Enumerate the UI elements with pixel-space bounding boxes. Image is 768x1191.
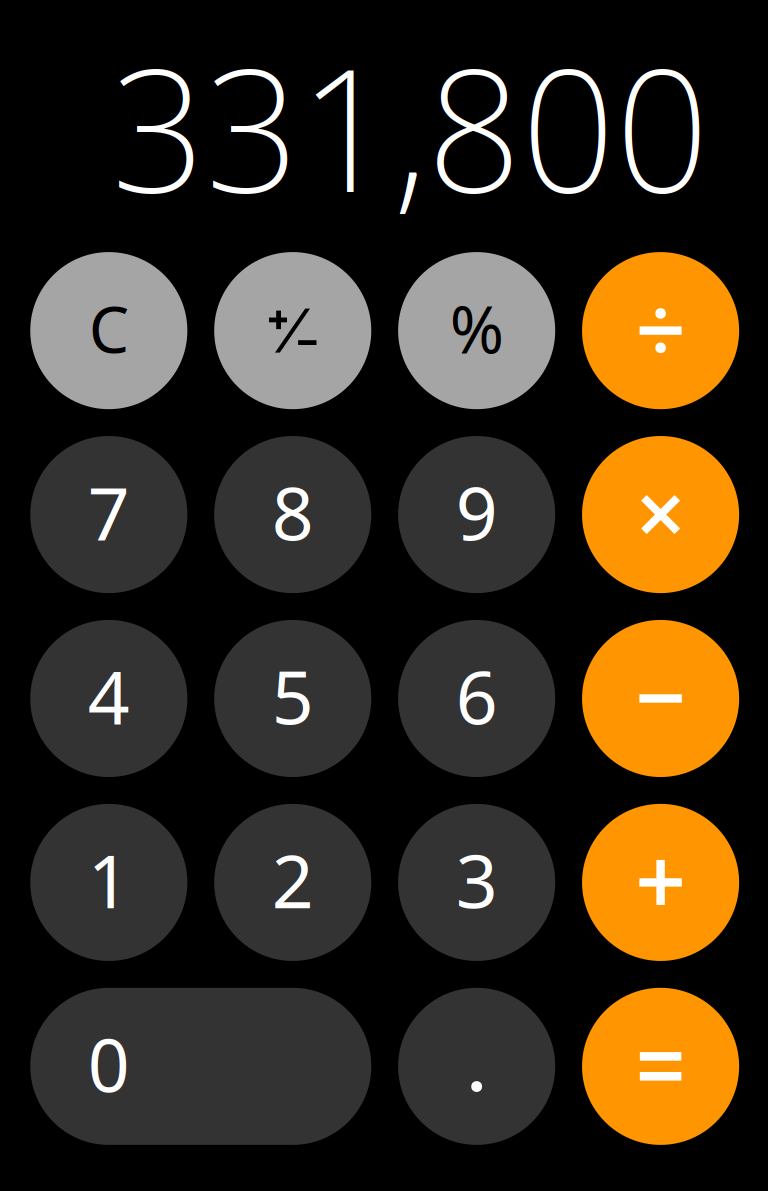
button[interactable]: 2 xyxy=(214,804,371,961)
button[interactable]: Multiply xyxy=(582,436,739,593)
button[interactable]: Plus minus xyxy=(214,252,371,409)
staticText: 7 xyxy=(88,462,130,562)
button[interactable]: 3 xyxy=(398,804,555,961)
staticText: 6 xyxy=(456,646,498,746)
button[interactable]: C xyxy=(30,252,187,409)
staticText: 0 xyxy=(88,1014,130,1114)
staticText: 9 xyxy=(456,462,498,562)
staticText: 331,800 xyxy=(111,10,709,242)
staticText: 8 xyxy=(272,462,314,562)
staticText: 3 xyxy=(456,830,498,930)
button[interactable]: Plus xyxy=(582,804,739,961)
staticText: % xyxy=(450,284,504,373)
button[interactable]: 0 xyxy=(30,988,371,1145)
staticText: C xyxy=(89,284,129,372)
button[interactable]: 4 xyxy=(30,620,187,777)
button[interactable]: 8 xyxy=(214,436,371,593)
staticText: 2 xyxy=(272,830,314,930)
button[interactable]: 5 xyxy=(214,620,371,777)
button[interactable]: 9 xyxy=(398,436,555,593)
button[interactable]: Minus xyxy=(582,620,739,777)
button[interactable]: Decimal point xyxy=(398,988,555,1145)
staticText: 1 xyxy=(88,830,130,930)
button[interactable]: % xyxy=(398,252,555,409)
staticText: 5 xyxy=(272,646,314,746)
button[interactable]: 6 xyxy=(398,620,555,777)
staticText: 4 xyxy=(88,646,130,746)
button[interactable]: Equals xyxy=(582,988,739,1145)
button[interactable]: 7 xyxy=(30,436,187,593)
button[interactable]: Divide xyxy=(582,252,739,409)
button[interactable]: 1 xyxy=(30,804,187,961)
